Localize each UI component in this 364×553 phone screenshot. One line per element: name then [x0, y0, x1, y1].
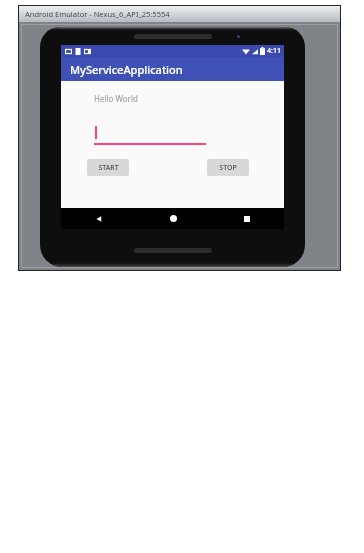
button[interactable]: Text input [94, 125, 206, 145]
staticText: 4:11 [267, 46, 281, 56]
staticText: MyServiceApplication [70, 62, 183, 77]
button[interactable]: Home [136, 208, 210, 229]
staticText: Hello World [94, 93, 138, 104]
button[interactable]: STOP [207, 159, 249, 176]
button[interactable]: START [87, 159, 129, 176]
button[interactable]: Recent apps [210, 208, 284, 229]
staticText: START [98, 163, 119, 173]
staticText: Android Emulator - Nexus_6_API_25:5554 [25, 9, 170, 19]
staticText: STOP [219, 163, 237, 173]
button[interactable]: Back [61, 208, 136, 229]
